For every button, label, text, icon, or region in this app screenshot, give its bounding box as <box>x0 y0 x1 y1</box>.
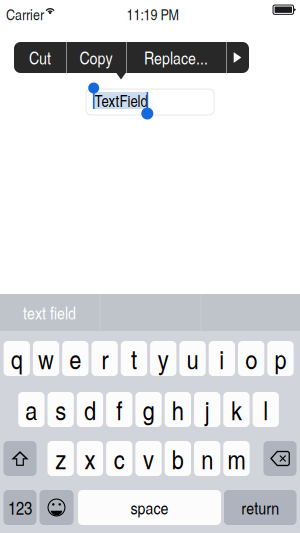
button[interactable]: x <box>77 441 103 476</box>
staticText: return <box>241 496 279 519</box>
button[interactable]: g <box>135 392 162 427</box>
button[interactable]: e <box>62 341 88 376</box>
button[interactable]: b <box>165 441 191 476</box>
button[interactable]: text field <box>0 294 99 331</box>
button[interactable]: Shift <box>3 441 36 476</box>
button[interactable]: p <box>267 341 294 376</box>
button[interactable]: Delete <box>263 441 296 476</box>
button[interactable]: f <box>106 392 132 427</box>
button[interactable]: u <box>179 341 206 376</box>
button[interactable]: m <box>223 441 250 476</box>
button[interactable]: v <box>135 441 162 476</box>
button[interactable]: 123 <box>3 490 36 525</box>
staticText: text field <box>23 301 76 324</box>
staticText: b <box>172 440 184 477</box>
staticText: n <box>201 440 213 477</box>
staticText: y <box>158 340 169 377</box>
staticText: Cut <box>29 46 51 69</box>
staticText: x <box>84 440 95 477</box>
staticText: v <box>143 440 154 477</box>
staticText: g <box>143 391 155 428</box>
button[interactable]: y <box>150 341 176 376</box>
button[interactable]: space <box>78 490 221 525</box>
staticText: Copy <box>79 46 112 69</box>
staticText: h <box>172 391 184 428</box>
staticText: m <box>227 440 245 477</box>
staticText: j <box>205 391 210 428</box>
staticText: r <box>101 340 108 377</box>
staticText: c <box>114 440 125 477</box>
button[interactable]: q <box>4 341 30 376</box>
button[interactable]: Copy <box>66 42 126 73</box>
staticText: 11:19 PM <box>126 3 178 24</box>
button[interactable]: n <box>194 441 220 476</box>
staticText: f <box>116 391 122 428</box>
button[interactable]: return <box>224 490 296 525</box>
button[interactable]: o <box>238 341 264 376</box>
staticText: p <box>274 340 286 377</box>
staticText: o <box>245 340 257 377</box>
staticText: space <box>130 496 168 519</box>
staticText: z <box>55 440 66 477</box>
button[interactable]: t <box>121 341 147 376</box>
button[interactable]: w <box>33 341 59 376</box>
staticText: e <box>69 340 81 377</box>
button[interactable]: d <box>77 392 103 427</box>
button[interactable]: k <box>223 392 250 427</box>
button[interactable]: More <box>226 42 249 73</box>
button[interactable]: s <box>47 392 74 427</box>
button[interactable]: j <box>194 392 220 427</box>
staticText: w <box>38 340 54 377</box>
staticText: TextField <box>94 89 147 111</box>
button[interactable]: z <box>47 441 74 476</box>
button[interactable]: r <box>91 341 118 376</box>
staticText: s <box>55 391 66 428</box>
button[interactable]: Cut <box>14 42 66 73</box>
staticText: q <box>11 340 23 377</box>
button[interactable]: Emoji <box>39 490 73 525</box>
button[interactable]: c <box>106 441 132 476</box>
staticText: l <box>263 391 268 428</box>
staticText: k <box>231 391 242 428</box>
button[interactable]: i <box>209 341 235 376</box>
staticText: Carrier <box>6 3 44 24</box>
staticText: a <box>25 391 37 428</box>
staticText: Replace... <box>144 46 208 69</box>
staticText: 123 <box>8 495 32 520</box>
button[interactable]: h <box>165 392 191 427</box>
button[interactable]: a <box>18 392 44 427</box>
staticText: d <box>84 391 96 428</box>
staticText: t <box>131 340 137 377</box>
button[interactable]: l <box>253 392 279 427</box>
staticText: i <box>219 340 224 377</box>
staticText: u <box>187 340 199 377</box>
button[interactable]: Replace... <box>126 42 226 73</box>
